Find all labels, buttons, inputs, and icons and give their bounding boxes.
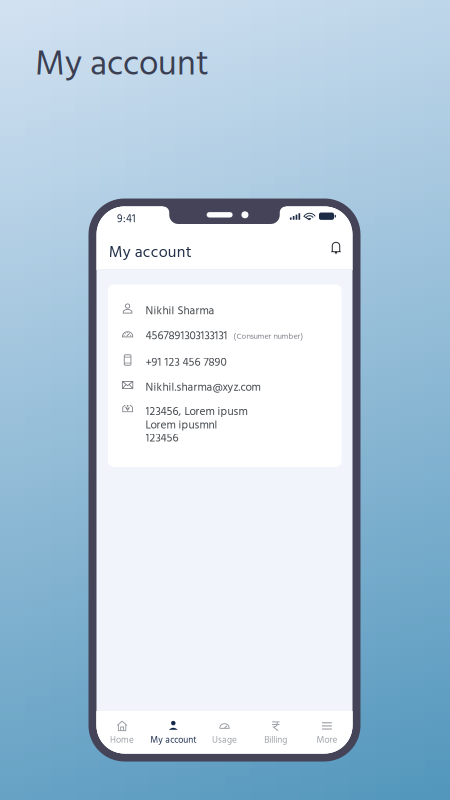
staticText: 123456 bbox=[145, 429, 178, 448]
staticText: Lorem ipusmnl bbox=[145, 416, 217, 435]
staticText: 9:41 bbox=[117, 211, 136, 228]
staticText: My account bbox=[109, 240, 192, 266]
staticText: 4567891303133131 bbox=[145, 327, 227, 345]
button[interactable]: Home bbox=[96, 711, 148, 754]
button[interactable]: Usage bbox=[199, 711, 250, 754]
button[interactable]: My account bbox=[148, 711, 199, 754]
button[interactable]: Notifications bbox=[324, 236, 348, 260]
staticText: Usage bbox=[212, 733, 237, 748]
staticText: Nikhil Sharma bbox=[145, 302, 214, 320]
staticText: Billing bbox=[264, 733, 287, 748]
staticText: +91 123 456 7890 bbox=[145, 354, 226, 372]
staticText: (Consumer number) bbox=[233, 330, 303, 343]
staticText: More bbox=[316, 733, 337, 748]
staticText: My account bbox=[35, 38, 209, 93]
staticText: Home bbox=[110, 733, 134, 748]
button[interactable]: More bbox=[301, 711, 352, 754]
button[interactable]: Billing bbox=[250, 711, 301, 754]
staticText: Nikhil.sharma@xyz.com bbox=[145, 379, 260, 397]
staticText: My account bbox=[150, 733, 196, 748]
staticText: 123456, Lorem ipusm bbox=[145, 403, 247, 421]
